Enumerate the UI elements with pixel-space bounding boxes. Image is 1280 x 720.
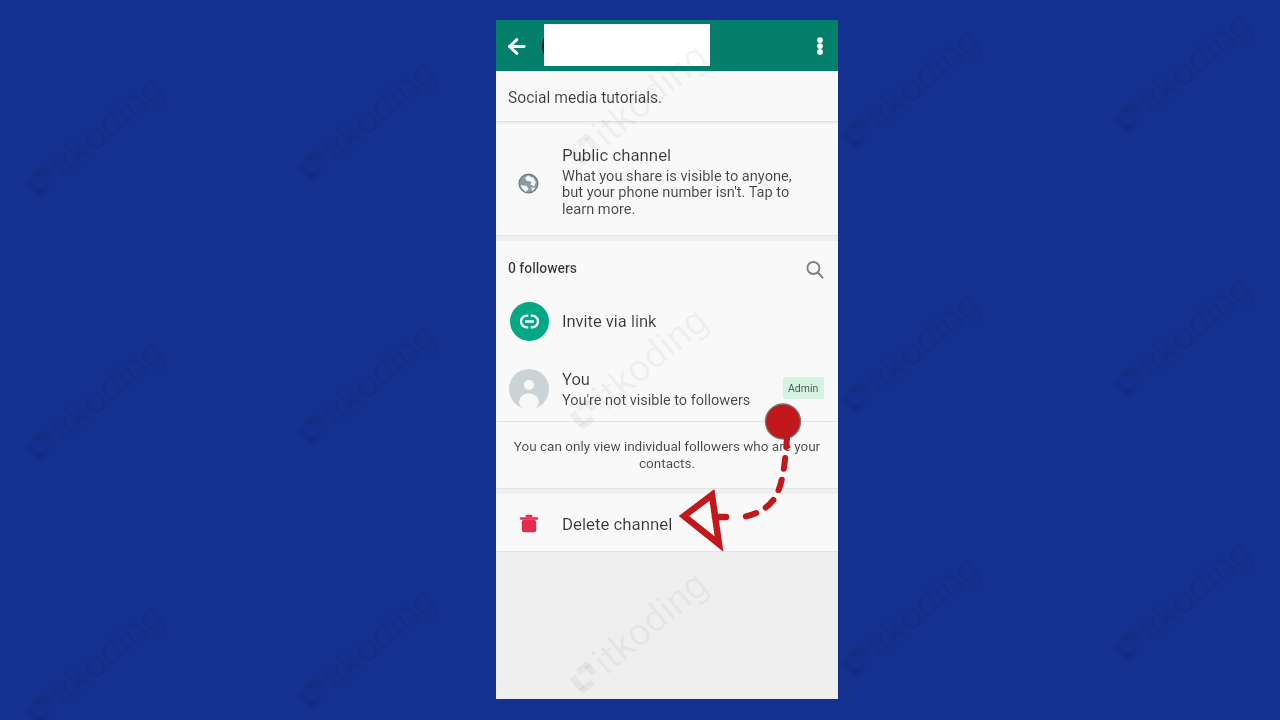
button[interactable]: Invite via link [496,292,838,351]
staticText: Social media tutorials. [508,89,663,107]
button[interactable]: Back [496,26,536,66]
staticText: Admin [788,382,819,394]
staticText: Invite via link [562,312,657,331]
button[interactable]: Admin [783,377,824,399]
staticText: itkoding [584,298,717,419]
button[interactable]: You [496,351,838,421]
staticText: What you share is visible to anyone, but… [562,167,796,218]
staticText: You're not visible to followers [562,392,751,409]
button[interactable]: More options [800,26,840,66]
staticText: You [562,370,590,389]
button[interactable]: Channel photo [542,27,580,65]
staticText: Public channel [562,145,672,165]
staticText: 0 followers [508,260,578,276]
staticText: Delete channel [562,514,673,534]
button[interactable]: Public channel [496,124,838,235]
button[interactable]: Search followers [798,253,832,287]
staticText: You can only view individual followers w… [511,438,823,471]
button[interactable]: Delete channel [496,494,838,551]
staticText: itkoding [584,34,717,155]
